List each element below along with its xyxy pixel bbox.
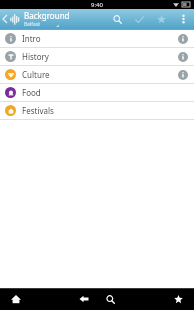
button[interactable]: Mark read: [128, 9, 150, 29]
staticText: Background: [24, 10, 70, 21]
button[interactable]: Info about Culture: [177, 69, 189, 81]
staticText: Food: [22, 87, 41, 98]
button[interactable]: Favourites: [150, 9, 172, 29]
button[interactable]: Search: [101, 290, 119, 308]
button[interactable]: Culture: [0, 66, 194, 83]
button[interactable]: History: [0, 48, 194, 65]
button[interactable]: Favourites: [169, 290, 187, 308]
button[interactable]: Up: [0, 9, 73, 29]
button[interactable]: More options: [172, 9, 194, 29]
button[interactable]: Search: [106, 9, 128, 29]
staticText: Belfast: [24, 21, 41, 28]
staticText: 9:40: [91, 1, 103, 9]
staticText: History: [22, 51, 49, 62]
staticText: Intro: [22, 33, 41, 44]
button[interactable]: Back: [75, 290, 93, 308]
button[interactable]: Info about Intro: [177, 33, 189, 45]
button[interactable]: Intro: [0, 30, 194, 47]
button[interactable]: Info about History: [177, 51, 189, 63]
button[interactable]: Festivals: [0, 102, 194, 119]
other: Up: [3, 15, 7, 23]
staticText: Festivals: [22, 105, 54, 116]
staticText: Culture: [22, 69, 50, 80]
button[interactable]: Home: [7, 290, 25, 308]
button[interactable]: Food: [0, 84, 194, 101]
